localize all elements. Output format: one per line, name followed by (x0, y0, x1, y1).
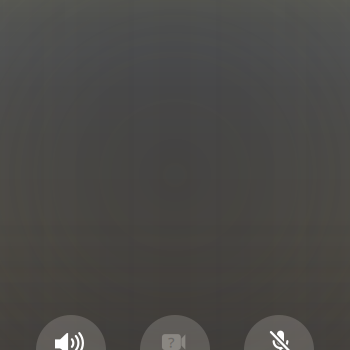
button[interactable]: Turn Camera Off (140, 315, 210, 350)
button[interactable]: Unmute (244, 315, 314, 350)
button[interactable]: Speaker (36, 315, 106, 350)
staticText: ? (168, 332, 175, 350)
